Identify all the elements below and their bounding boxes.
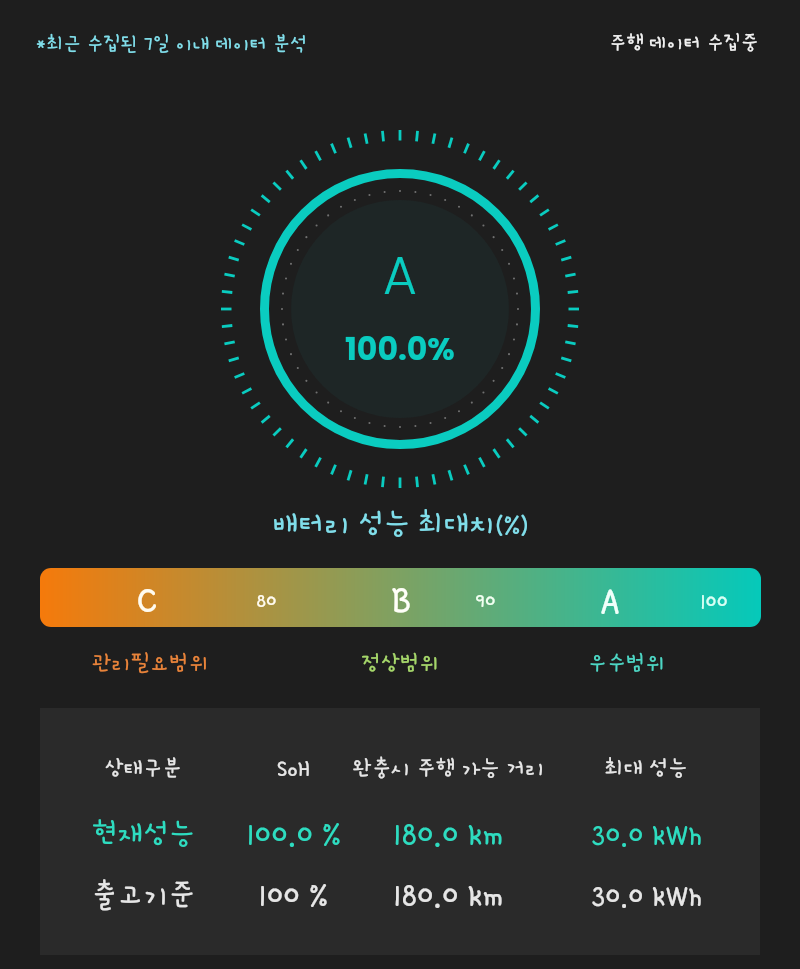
staticText: 상태구분: [104, 756, 182, 780]
staticText: 현재성능: [92, 818, 195, 850]
button[interactable]: 관리필요범위: [50, 643, 250, 683]
staticText: 30.0 kWh: [591, 818, 702, 851]
staticText: SoH: [277, 755, 310, 781]
staticText: A: [383, 239, 417, 312]
staticText: 배터리 성능 최대치(%): [273, 508, 528, 540]
staticText: 100 %: [258, 877, 328, 913]
staticText: 관리필요범위: [92, 651, 208, 675]
staticText: 우수범위: [587, 651, 665, 675]
button[interactable]: *최근 수집된 7일 이내 데이터 분석: [36, 33, 308, 55]
staticText: *최근 수집된 7일 이내 데이터 분석: [36, 33, 308, 55]
staticText: 100.0%: [345, 327, 455, 371]
button[interactable]: 우수범위: [526, 643, 726, 683]
staticText: 정상범위: [361, 651, 439, 675]
staticText: 완충시 주행 가능 거리: [352, 756, 545, 780]
staticText: 최대 성능: [604, 756, 688, 780]
staticText: 30.0 kWh: [591, 879, 702, 912]
button[interactable]: 정상범위: [300, 643, 500, 683]
staticText: 출고기준: [92, 879, 195, 911]
staticText: 80: [256, 589, 277, 612]
staticText: 90: [475, 589, 496, 612]
staticText: A: [600, 579, 620, 622]
staticText: 180.0 km: [393, 877, 503, 913]
staticText: 주행 데이터 수집중: [609, 32, 759, 54]
staticText: 100.0 %: [246, 816, 341, 852]
staticText: 180.0 km: [393, 816, 503, 852]
staticText: 100: [700, 589, 728, 613]
button[interactable]: 주행 데이터 수집중: [609, 32, 759, 54]
staticText: C: [137, 580, 158, 621]
staticText: B: [391, 580, 411, 621]
button[interactable]: C: [40, 568, 761, 627]
